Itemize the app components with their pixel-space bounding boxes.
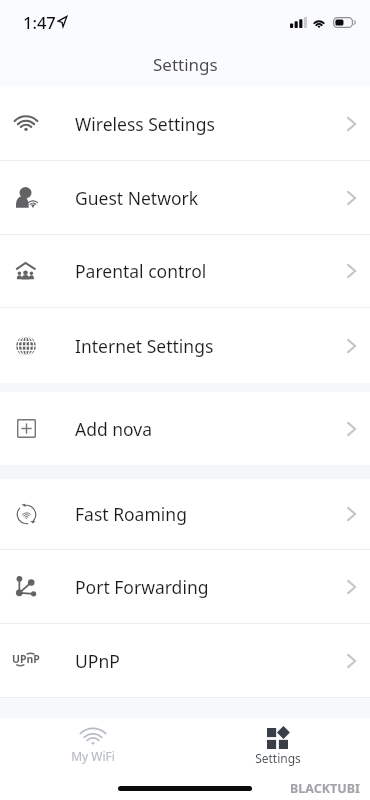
staticText: Wireless Settings [75, 112, 215, 136]
staticText: Parental control [75, 259, 207, 283]
button[interactable]: Add nova [0, 392, 370, 465]
button[interactable]: Fast Roaming [0, 479, 370, 549]
staticText: Settings [153, 53, 218, 76]
button[interactable]: Settings tab [185, 718, 370, 771]
staticText: Fast Roaming [75, 502, 187, 526]
staticText: 1:47 [23, 11, 56, 33]
button[interactable]: Guest Network [0, 161, 370, 234]
staticText: Guest Network [75, 186, 199, 210]
button[interactable]: Parental control [0, 235, 370, 307]
staticText: UPnP [75, 649, 120, 673]
staticText: Add nova [75, 417, 153, 441]
staticText: My WiFi [71, 748, 115, 764]
staticText: UPnP [12, 652, 40, 666]
staticText: Port Forwarding [75, 575, 209, 599]
button[interactable]: Port Forwarding [0, 550, 370, 623]
button[interactable]: Internet Settings [0, 308, 370, 383]
staticText: BLACKTUBI [290, 780, 360, 797]
button[interactable]: UPnP [0, 624, 370, 697]
button[interactable]: Wireless Settings [0, 87, 370, 160]
staticText: Settings [255, 750, 301, 766]
staticText: Internet Settings [75, 334, 214, 358]
button[interactable]: My WiFi tab [0, 718, 185, 771]
